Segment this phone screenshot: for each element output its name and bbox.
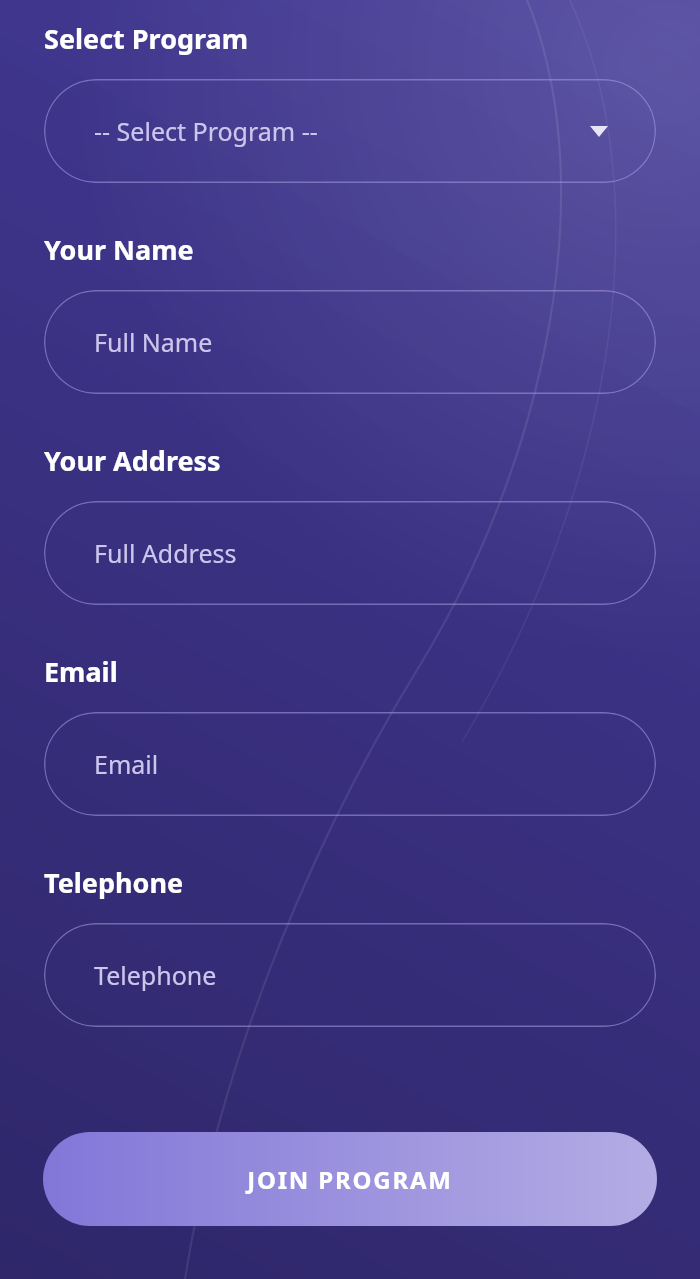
button[interactable]: Email — [44, 712, 656, 816]
staticText: Email — [94, 747, 159, 781]
staticText: Telephone — [94, 958, 217, 992]
staticText: Your Address — [44, 442, 221, 479]
button[interactable]: Full Name — [44, 290, 656, 394]
staticText: Email — [44, 653, 118, 690]
staticText: -- Select Program -- — [94, 114, 318, 148]
button[interactable]: Telephone — [44, 923, 656, 1027]
staticText: Full Name — [94, 325, 213, 359]
button[interactable]: JOIN PROGRAM — [43, 1132, 657, 1226]
staticText: Select Program — [44, 20, 249, 57]
button[interactable]: Full Address — [44, 501, 656, 605]
staticText: Telephone — [44, 864, 184, 901]
other: Open program dropdown — [586, 118, 612, 144]
button[interactable]: -- Select Program -- — [44, 79, 656, 183]
staticText: Your Name — [44, 231, 194, 268]
staticText: Full Address — [94, 536, 237, 570]
staticText: JOIN PROGRAM — [247, 1163, 453, 1196]
